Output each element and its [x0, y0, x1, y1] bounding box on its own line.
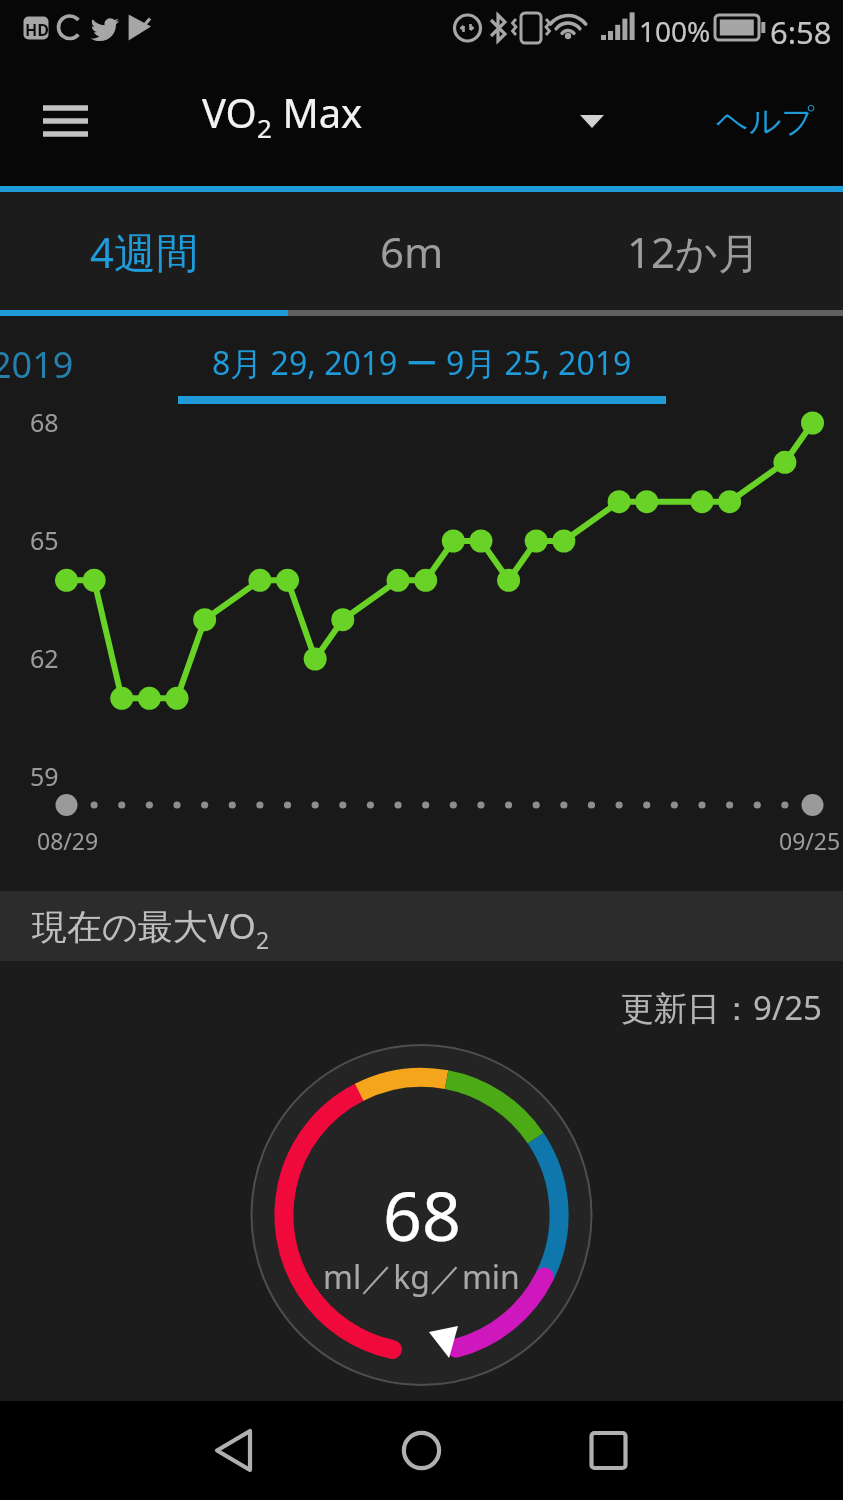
staticText: ヘルプ	[716, 101, 815, 141]
staticText: Max	[272, 85, 363, 139]
staticText: 6m	[380, 223, 444, 280]
staticText: 12か月	[627, 223, 761, 280]
staticText: 100%	[639, 12, 711, 50]
staticText: 09/25	[779, 825, 841, 856]
staticText: 08/29	[37, 825, 99, 856]
staticText: 現在の最大VO	[32, 902, 256, 950]
button[interactable]: Back	[183, 1401, 283, 1500]
staticText: 6:58	[770, 11, 832, 53]
staticText: ml／kg／min	[323, 1255, 520, 1299]
staticText: 62	[30, 641, 59, 675]
staticText: 68	[30, 405, 59, 439]
staticText: VO	[202, 85, 257, 139]
staticText: 68	[383, 1168, 461, 1261]
button[interactable]: 12か月	[552, 192, 835, 316]
staticText: 更新日：9/25	[621, 985, 822, 1030]
button[interactable]: ヘルプ	[702, 91, 829, 151]
staticText: HD	[25, 19, 49, 41]
button[interactable]: 6m	[276, 192, 548, 316]
button[interactable]: Navigation menu	[20, 76, 110, 166]
button[interactable]: Home	[371, 1401, 471, 1500]
staticText: 59	[30, 759, 59, 793]
button[interactable]: Recent apps	[558, 1401, 658, 1500]
button[interactable]: 4週間	[0, 192, 288, 316]
staticText: 2	[257, 110, 272, 145]
staticText: 4週間	[90, 223, 199, 280]
staticText: 2	[256, 924, 270, 955]
button[interactable]: Change metric	[554, 83, 630, 159]
staticText: 65	[30, 523, 59, 557]
staticText: 2019	[0, 340, 74, 389]
staticText: 8月 29, 2019 ー 9月 25, 2019	[212, 341, 632, 385]
